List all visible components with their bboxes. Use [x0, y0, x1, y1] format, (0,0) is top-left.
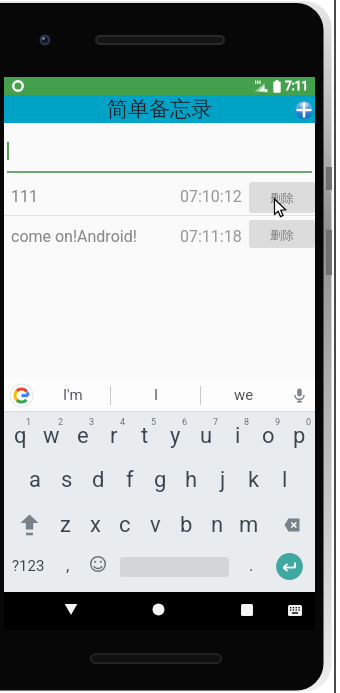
button[interactable]: n [202, 502, 233, 547]
button[interactable] [4, 502, 50, 547]
button[interactable]: i [222, 412, 253, 457]
staticText: b [180, 512, 193, 538]
button[interactable]: 删除 [249, 182, 315, 213]
button[interactable]: ?123 [8, 547, 48, 592]
staticText: 7 [213, 417, 219, 428]
button[interactable] [288, 605, 302, 616]
staticText: m [239, 512, 259, 538]
staticText: 7:11 [285, 79, 309, 93]
staticText: a [29, 467, 41, 493]
button[interactable]: I [136, 379, 176, 411]
staticText: g [154, 467, 167, 493]
staticText: r [110, 423, 118, 449]
staticText: d [92, 467, 105, 493]
staticText: 8 [244, 417, 250, 428]
staticText: I [154, 386, 159, 404]
staticText: 07:10:12 [180, 187, 242, 206]
button[interactable]: h [176, 457, 207, 502]
button[interactable]: e [67, 412, 98, 457]
button[interactable]: k [238, 457, 269, 502]
button[interactable]: v [140, 502, 171, 547]
button[interactable]: m [233, 502, 264, 547]
button[interactable]: f [114, 457, 145, 502]
staticText: w [43, 423, 60, 449]
staticText: k [248, 467, 260, 493]
button[interactable] [90, 556, 106, 572]
staticText: 2 [58, 417, 64, 428]
button[interactable]: . [239, 547, 263, 592]
button[interactable]: l [269, 457, 300, 502]
button[interactable]: x [80, 502, 110, 547]
button[interactable]: 删除 [249, 220, 315, 248]
button[interactable]: 111 [4, 173, 315, 215]
button[interactable]: c [110, 502, 140, 547]
staticText: i [235, 423, 241, 449]
button[interactable] [10, 384, 33, 407]
staticText: z [60, 512, 71, 538]
staticText: come on!Android! [11, 227, 137, 246]
button[interactable] [4, 123, 315, 173]
button[interactable]: r [98, 412, 129, 457]
staticText: 111 [11, 187, 38, 206]
staticText: o [262, 423, 275, 449]
staticText: y [170, 423, 181, 449]
button[interactable]: p [284, 412, 315, 457]
button[interactable]: g [145, 457, 176, 502]
staticText: we [234, 386, 254, 404]
button[interactable] [64, 603, 78, 616]
staticText: 9 [275, 417, 281, 428]
button[interactable] [152, 603, 165, 616]
staticText: 3 [89, 417, 95, 428]
button[interactable]: b [171, 502, 202, 547]
staticText: e [77, 423, 89, 449]
staticText: s [61, 467, 73, 493]
staticText: l [282, 467, 288, 493]
staticText: 07:11:18 [180, 227, 242, 246]
staticText: u [200, 423, 213, 449]
button[interactable] [295, 101, 313, 119]
staticText: q [14, 423, 27, 449]
button[interactable]: u [191, 412, 222, 457]
button[interactable]: d [83, 457, 114, 502]
staticText: 0 [306, 417, 312, 428]
staticText: 4 [120, 417, 126, 428]
button[interactable]: s [51, 457, 83, 502]
staticText: t [141, 423, 149, 449]
button[interactable] [264, 502, 315, 547]
staticText: 5 [151, 417, 157, 428]
button[interactable]: j [207, 457, 238, 502]
staticText: 删除 [270, 190, 294, 205]
staticText: I'm [63, 386, 83, 404]
staticText: 1 [26, 417, 32, 428]
staticText: j [220, 467, 226, 493]
button[interactable]: a [19, 457, 51, 502]
staticText: v [150, 512, 161, 538]
staticText: . [249, 555, 254, 575]
button[interactable]: we [224, 379, 264, 411]
button[interactable] [276, 553, 303, 580]
staticText: x [90, 512, 101, 538]
staticText: 简单备忘录 [107, 96, 212, 122]
button[interactable]: t [129, 412, 160, 457]
staticText: 删除 [270, 227, 294, 242]
button[interactable] [241, 604, 253, 616]
staticText: h [185, 467, 198, 493]
button[interactable]: I'm [53, 379, 93, 411]
staticText: 6 [182, 417, 188, 428]
button[interactable]: z [50, 502, 80, 547]
staticText: ?123 [12, 557, 45, 575]
staticText: n [211, 512, 224, 538]
button[interactable]: o [253, 412, 284, 457]
button[interactable]: , [56, 547, 80, 592]
button[interactable]: w [36, 412, 67, 457]
button[interactable]: q [4, 412, 36, 457]
button[interactable] [292, 388, 307, 403]
staticText: c [119, 512, 131, 538]
staticText: p [293, 423, 306, 449]
staticText: , [66, 555, 70, 575]
button[interactable]: come on!Android! [4, 216, 315, 252]
button[interactable]: y [160, 412, 191, 457]
staticText: f [126, 467, 134, 493]
